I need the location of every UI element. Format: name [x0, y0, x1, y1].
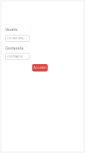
staticText: CIF/NIF/NIE: [7, 37, 24, 40]
button[interactable]: Acceder: [32, 64, 47, 71]
staticText: Usuario: [5, 28, 17, 31]
staticText: Contraseña: [7, 55, 22, 58]
staticText: Contraseña: [5, 47, 23, 50]
staticText: Acceder: [33, 66, 46, 69]
